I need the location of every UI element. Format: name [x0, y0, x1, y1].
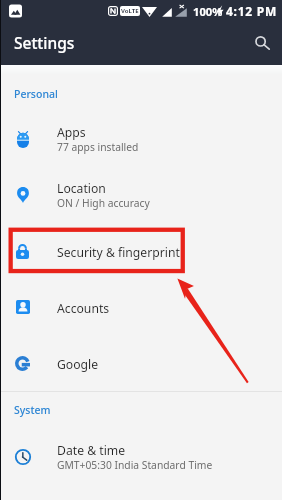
button[interactable]: Accounts: [0, 279, 282, 335]
staticText: Google: [57, 356, 99, 373]
staticText: ON / High accuracy: [57, 196, 150, 210]
staticText: 77 apps installed: [57, 140, 139, 154]
staticText: Security & fingerprint: [57, 244, 180, 261]
button[interactable]: Location: [0, 167, 282, 223]
staticText: Date & time: [57, 442, 126, 459]
staticText: Apps: [57, 124, 86, 141]
staticText: Accounts: [57, 300, 110, 317]
button[interactable]: Date & time: [0, 429, 282, 485]
button[interactable]: Search: [248, 29, 276, 57]
button[interactable]: Google: [0, 335, 282, 391]
button[interactable]: Security & fingerprint: [0, 223, 282, 279]
staticText: System: [14, 403, 51, 417]
staticText: Location: [57, 180, 106, 197]
staticText: Settings: [14, 32, 75, 53]
staticText: VoLTE: [121, 7, 139, 15]
staticText: Personal: [14, 87, 58, 101]
staticText: 100%: [193, 4, 223, 19]
staticText: 4:12 PM: [226, 3, 278, 19]
button[interactable]: Apps: [0, 111, 282, 167]
staticText: GMT+05:30 India Standard Time: [57, 458, 213, 472]
